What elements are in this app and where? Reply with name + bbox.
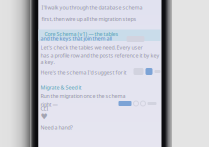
staticText: a key. xyxy=(40,58,54,66)
staticText: I'll walk you through the database schem… xyxy=(41,4,142,11)
staticText: ♥ xyxy=(40,112,47,121)
staticText: right — xyxy=(40,101,57,108)
staticText: Need a hand? xyxy=(40,124,72,131)
staticText: Let's check the tables we need. Every us… xyxy=(40,44,142,51)
staticText: CLI xyxy=(40,105,48,112)
staticText: Here's the schema I'd suggest for it xyxy=(40,69,126,76)
staticText: has a profile row and the posts referenc… xyxy=(40,52,159,59)
staticText: Migrate & Seed it xyxy=(40,84,81,91)
staticText: Run the migration once the schema xyxy=(40,92,125,100)
staticText: first, then wire up all the migration st… xyxy=(41,15,136,23)
staticText: Core Schema (v1) — the tables xyxy=(44,30,118,37)
staticText: and the keys that join them all xyxy=(40,35,111,42)
